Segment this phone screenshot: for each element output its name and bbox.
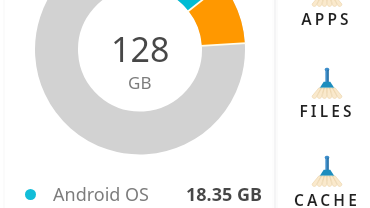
other: Clean: [308, 66, 346, 101]
button[interactable]: Clean: [277, 54, 370, 123]
button[interactable]: Clean: [277, 0, 370, 31]
staticText: APPS: [301, 8, 352, 29]
staticText: 18.35 GB: [186, 182, 262, 207]
other: Clean: [308, 0, 346, 9]
other: Clean: [308, 154, 346, 189]
staticText: FILES: [299, 100, 355, 121]
staticText: 128: [111, 26, 170, 72]
button[interactable]: Clean: [277, 142, 370, 208]
staticText: Android OS: [53, 182, 149, 207]
button[interactable]: [5, 0, 272, 208]
staticText: GB: [128, 71, 152, 94]
staticText: CACHE: [294, 189, 360, 208]
